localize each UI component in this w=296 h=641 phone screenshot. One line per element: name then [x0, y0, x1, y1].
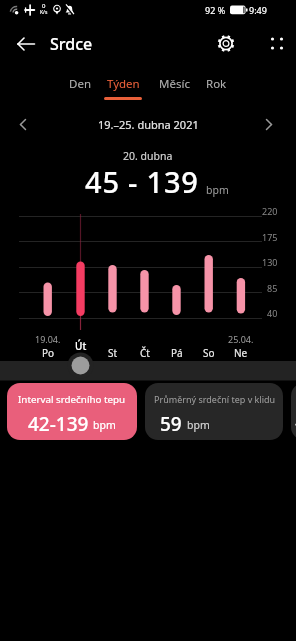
staticText: 92 %	[205, 4, 226, 16]
staticText: 19.–25. dubna 2021	[98, 117, 199, 132]
staticText: Út	[75, 339, 87, 353]
staticText: St	[108, 346, 118, 360]
staticText: Den	[69, 76, 91, 92]
staticText: 130	[262, 256, 278, 268]
staticText: 40	[267, 307, 278, 319]
staticText: 25.04.	[228, 333, 254, 345]
staticText: 0	[42, 2, 46, 10]
staticText: Srdce	[50, 33, 93, 55]
staticText: Pá	[171, 346, 183, 360]
staticText: bpm	[187, 418, 210, 432]
staticText: Čt	[140, 346, 150, 360]
staticText: 220	[262, 205, 278, 217]
staticText: bpm	[93, 418, 116, 432]
staticText: bpm	[206, 183, 229, 197]
button[interactable]	[6, 108, 40, 140]
button[interactable]: Průměrný srdeční tep v klidu	[145, 383, 283, 440]
staticText: Po	[42, 346, 55, 360]
staticText: 9:49	[249, 4, 267, 16]
staticText: 42-139	[28, 411, 89, 435]
button[interactable]	[208, 26, 244, 62]
staticText: –	[295, 412, 296, 434]
staticText: 85	[267, 282, 278, 294]
staticText: Interval srdečního tepu	[18, 393, 126, 406]
staticText: 20. dubna	[123, 149, 173, 163]
button[interactable]: Den	[54, 72, 106, 96]
button[interactable]	[259, 26, 295, 62]
staticText: 19.04.	[35, 333, 61, 345]
button[interactable]: Interval srdečního tepu	[7, 383, 137, 440]
staticText: 59	[160, 411, 182, 435]
staticText: 175	[262, 231, 278, 243]
staticText: Ne	[234, 346, 248, 360]
button[interactable]	[252, 108, 286, 140]
button[interactable]: Týden	[97, 72, 149, 96]
button[interactable]	[8, 26, 44, 62]
staticText: 45 - 139	[85, 162, 199, 193]
staticText: So	[203, 346, 215, 360]
button[interactable]: Měsíc	[148, 72, 200, 96]
staticText: Průměrný srdeční tep v klidu	[154, 393, 276, 405]
button[interactable]	[68, 353, 93, 378]
staticText: Týden	[107, 76, 140, 92]
staticText: Rok	[206, 76, 227, 92]
staticText: Měsíc	[159, 76, 190, 92]
staticText: K/s	[40, 9, 48, 16]
button[interactable]: Rok	[190, 72, 242, 96]
